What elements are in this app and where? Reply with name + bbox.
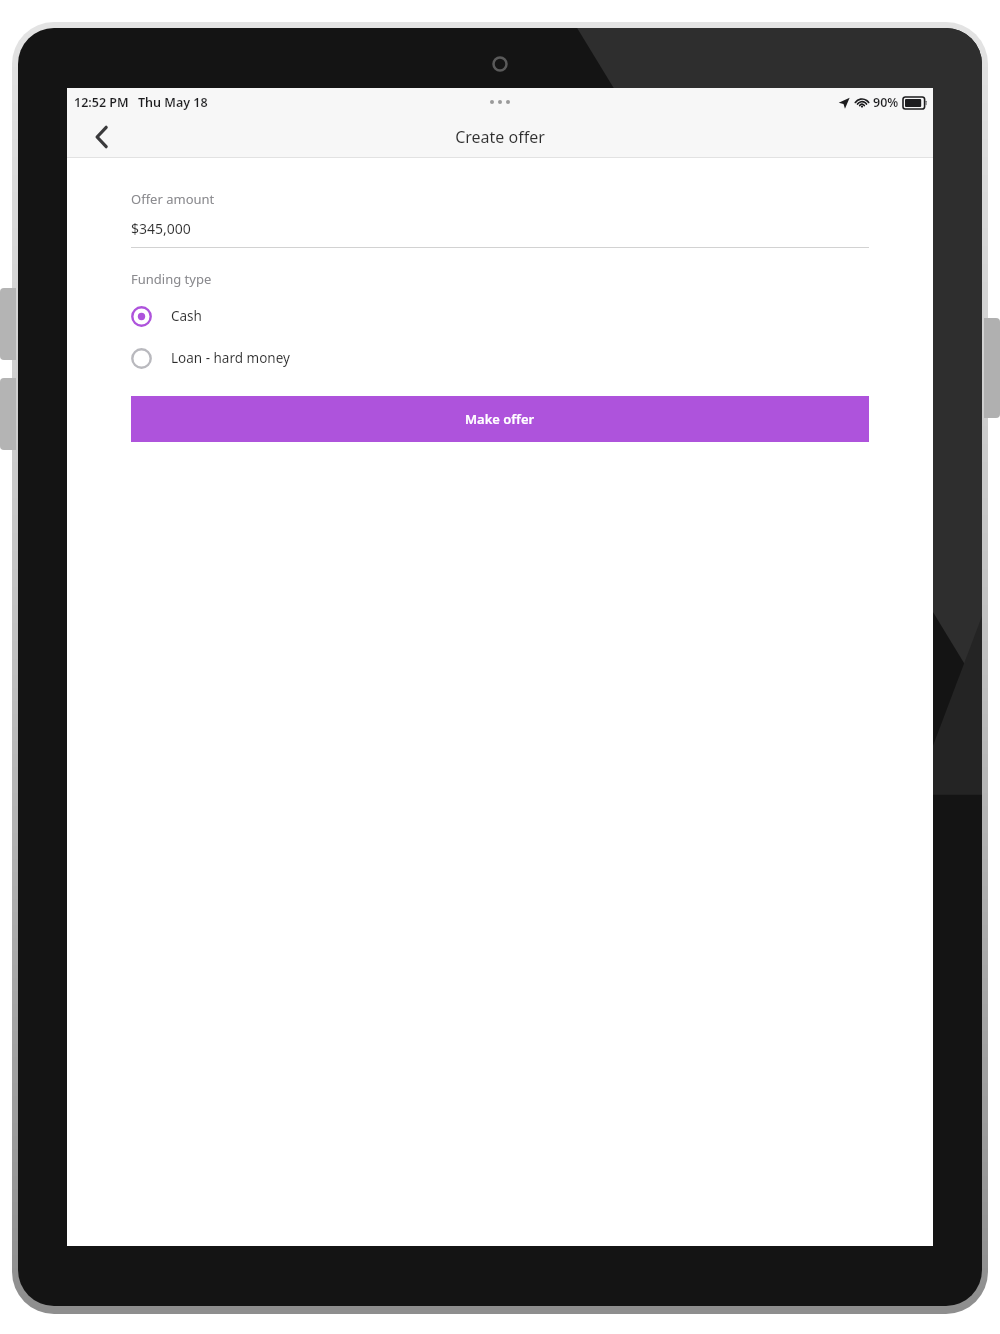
staticText: Funding type	[131, 270, 212, 288]
staticText: Create offer	[455, 126, 545, 148]
button[interactable]: Back	[81, 117, 121, 157]
staticText: Cash	[171, 307, 202, 325]
button[interactable]: $345,000	[131, 219, 191, 238]
button[interactable]: Loan - hard money	[131, 342, 869, 374]
staticText: 12:52 PM	[74, 94, 129, 111]
staticText: Offer amount	[131, 190, 215, 208]
button[interactable]: Make offer	[131, 396, 869, 442]
staticText: Loan - hard money	[171, 349, 290, 367]
staticText: Thu May 18	[138, 94, 208, 111]
button[interactable]: Cash	[131, 300, 869, 332]
staticText: 90%	[873, 94, 899, 111]
staticText: Make offer	[465, 410, 535, 428]
